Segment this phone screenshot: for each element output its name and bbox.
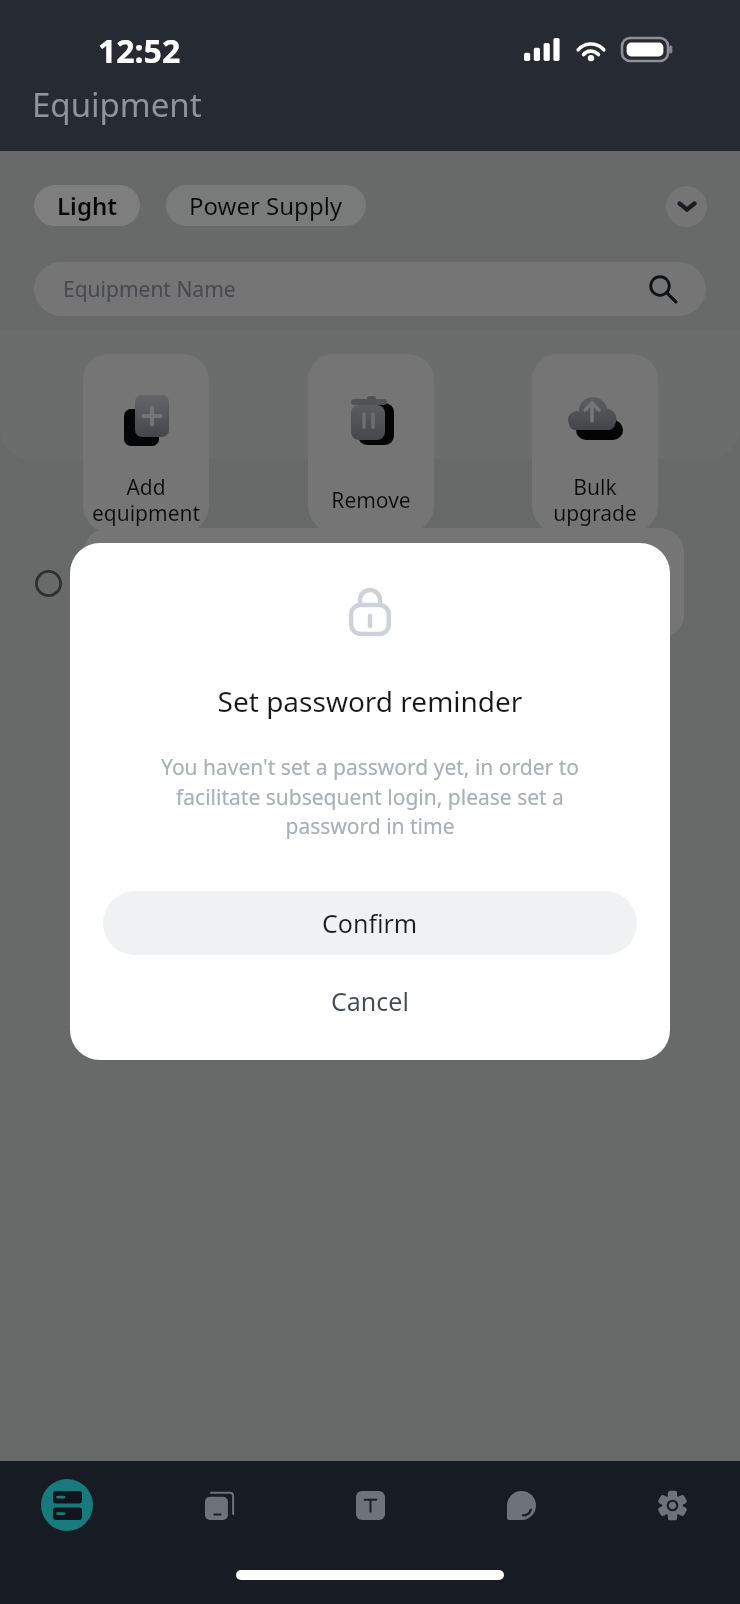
button[interactable]: Devices — [176, 1462, 262, 1548]
button[interactable]: Messages — [478, 1462, 564, 1548]
staticText: Equipment — [32, 82, 202, 127]
staticText: Confirm — [322, 906, 418, 940]
staticText: Add equipment — [83, 473, 209, 527]
staticText: Cancel — [331, 984, 409, 1018]
button[interactable]: Settings — [629, 1462, 715, 1548]
button[interactable]: Power Supply — [166, 185, 366, 226]
staticText: Equipment Name — [63, 275, 236, 304]
staticText: Bulk upgrade — [532, 473, 658, 527]
button[interactable]: Add equipment — [83, 354, 209, 532]
button[interactable]: Remove — [308, 354, 434, 532]
button[interactable]: Equipment Name — [34, 262, 706, 316]
staticText: Power Supply — [189, 189, 343, 222]
button[interactable]: Light — [34, 185, 140, 226]
staticText: Set password reminder — [70, 682, 670, 720]
button[interactable]: Cancel — [70, 968, 670, 1034]
button[interactable] — [0, 151, 740, 1461]
staticText: Remove — [308, 486, 434, 515]
staticText: 12:52 — [98, 29, 181, 73]
staticText: You haven't set a password yet, in order… — [148, 753, 592, 840]
staticText: Light — [57, 189, 117, 222]
button[interactable]: Confirm — [103, 891, 637, 955]
button[interactable]: Equipment — [24, 1462, 110, 1548]
button[interactable]: Templates — [327, 1462, 413, 1548]
button[interactable]: Bulk upgrade — [532, 354, 658, 532]
button[interactable]: Expand filters — [666, 186, 707, 227]
